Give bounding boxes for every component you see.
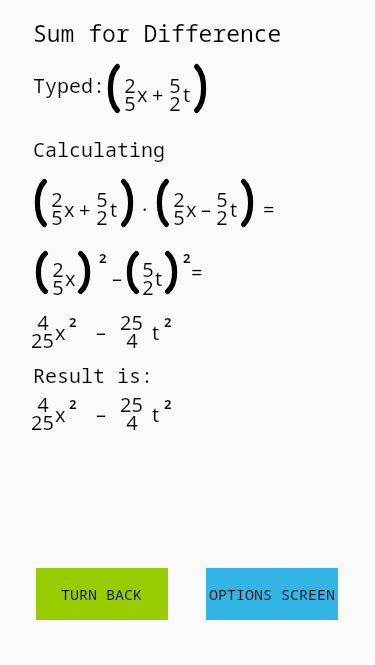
staticText: 25 — [120, 309, 143, 336]
staticText: t — [110, 196, 118, 223]
staticText: x — [64, 196, 75, 223]
staticText: t — [230, 196, 238, 223]
staticText: Typed: — [33, 72, 105, 99]
staticText: 5 — [52, 274, 64, 301]
staticText: 2 — [173, 186, 185, 213]
staticText: 4 — [126, 327, 138, 354]
staticText: Result is: — [33, 362, 153, 389]
staticText: 2 — [52, 256, 64, 283]
staticText: 2 — [99, 249, 107, 267]
staticText: 2 — [124, 72, 136, 99]
staticText: 4 — [37, 391, 49, 418]
staticText: 5 — [124, 90, 136, 117]
staticText: = — [191, 259, 203, 286]
staticText: – — [201, 196, 211, 223]
button[interactable]: TURN BACK — [36, 568, 168, 620]
staticText: x — [55, 319, 66, 346]
staticText: – — [112, 265, 122, 292]
staticText: 25 — [120, 391, 143, 418]
staticText: Sum for Difference — [33, 17, 282, 48]
staticText: 2 — [183, 249, 191, 267]
staticText: 2 — [51, 186, 63, 213]
staticText: 2 — [142, 274, 154, 301]
staticText: TURN BACK — [61, 584, 143, 604]
staticText: 25 — [31, 409, 54, 436]
staticText: t — [152, 319, 160, 346]
staticText: = — [263, 196, 275, 223]
staticText: 5 — [96, 186, 108, 213]
staticText: x — [65, 265, 76, 292]
staticText: – — [96, 401, 106, 428]
staticText: 2 — [216, 204, 228, 231]
staticText: · — [142, 196, 148, 223]
staticText: 5 — [173, 204, 185, 231]
staticText: 2 — [69, 313, 77, 331]
staticText: 2 — [164, 313, 172, 331]
staticText: + — [79, 196, 91, 223]
staticText: OPTIONS SCREEN — [209, 584, 336, 604]
staticText: 5 — [216, 186, 228, 213]
staticText: 25 — [31, 327, 54, 354]
staticText: 2 — [169, 90, 181, 117]
staticText: 2 — [69, 395, 77, 413]
staticText: x — [55, 401, 66, 428]
staticText: 2 — [96, 204, 108, 231]
staticText: 4 — [126, 409, 138, 436]
staticText: 5 — [169, 72, 181, 99]
button[interactable]: OPTIONS SCREEN — [206, 568, 338, 620]
staticText: t — [155, 265, 163, 292]
staticText: + — [152, 81, 164, 108]
staticText: t — [152, 401, 160, 428]
staticText: x — [186, 196, 197, 223]
staticText: t — [183, 81, 191, 108]
staticText: 4 — [37, 309, 49, 336]
staticText: 2 — [164, 395, 172, 413]
staticText: x — [137, 81, 148, 108]
staticText: Calculating — [33, 136, 165, 163]
staticText: 5 — [51, 204, 63, 231]
staticText: – — [96, 319, 106, 346]
staticText: 5 — [142, 256, 154, 283]
